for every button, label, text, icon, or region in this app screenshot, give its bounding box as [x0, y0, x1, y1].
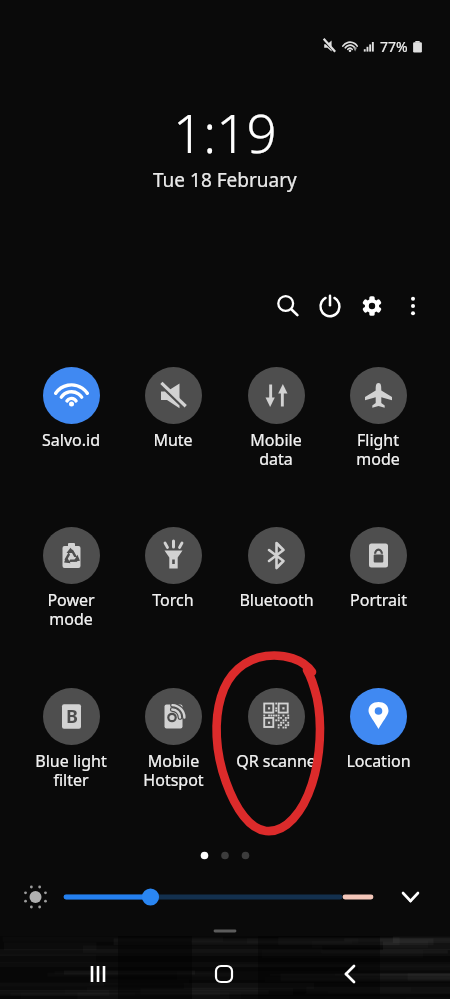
button[interactable]: Recent apps: [66, 949, 130, 999]
staticText: Blue light filter: [35, 750, 107, 791]
button[interactable]: Flight mode: [327, 367, 429, 470]
staticText: Flight mode: [356, 429, 400, 470]
staticText: Mobile data: [250, 429, 302, 470]
button[interactable]: Portrait: [327, 527, 429, 611]
staticText: QR scanne: [236, 750, 316, 772]
button[interactable]: Settings: [351, 285, 393, 327]
staticText: Mobile Hotspot: [143, 750, 204, 791]
staticText: Power mode: [47, 589, 95, 630]
button[interactable]: Mobile data: [225, 367, 327, 470]
staticText: Mute: [153, 429, 193, 451]
button[interactable]: Home: [192, 949, 256, 999]
staticText: 77%: [380, 37, 408, 56]
button[interactable]: QR scanne: [225, 688, 327, 772]
button[interactable]: Salvo.id: [20, 367, 122, 451]
staticText: Tue 18 February: [153, 167, 297, 193]
button[interactable]: B: [20, 688, 122, 791]
staticText: Portrait: [350, 589, 407, 611]
button[interactable]: Back: [318, 949, 382, 999]
button[interactable]: Power: [309, 285, 351, 327]
staticText: B: [66, 704, 78, 729]
staticText: Salvo.id: [42, 429, 100, 451]
button[interactable]: Search: [267, 285, 309, 327]
button[interactable]: Location: [327, 688, 429, 772]
button[interactable]: Mobile Hotspot: [122, 688, 224, 791]
button[interactable]: Mute: [122, 367, 224, 451]
button[interactable]: Torch: [122, 527, 224, 611]
staticText: Location: [346, 750, 411, 772]
staticText: 1:19: [173, 96, 277, 168]
staticText: Torch: [152, 589, 194, 611]
button[interactable]: More options: [392, 285, 434, 327]
button[interactable]: Bluetooth: [225, 527, 327, 611]
button[interactable]: Brightness: [16, 880, 434, 916]
button[interactable]: Power mode: [20, 527, 122, 630]
staticText: Bluetooth: [239, 589, 314, 611]
